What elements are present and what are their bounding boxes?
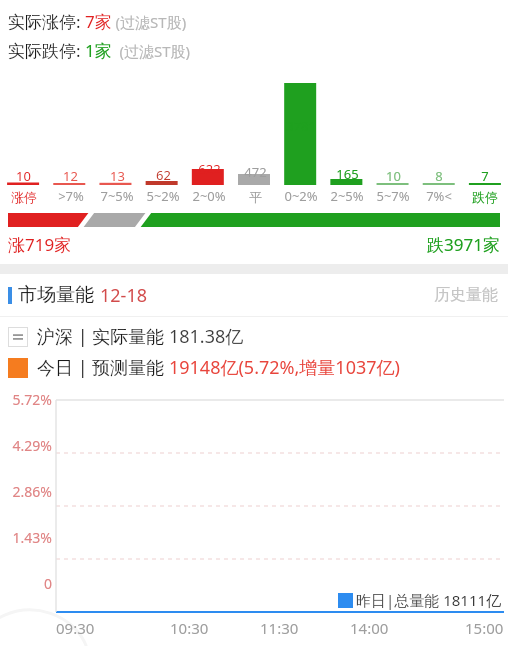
staticText: 市场量能 xyxy=(18,283,94,307)
staticText: 5~2% xyxy=(146,187,180,205)
button[interactable]: 昨日|总量能 18111亿 xyxy=(338,590,502,610)
staticText: 14:00 xyxy=(350,618,389,638)
staticText: 10 xyxy=(16,167,31,185)
staticText: 7%< xyxy=(426,187,452,205)
staticText: 7 xyxy=(481,167,489,185)
staticText: 472 xyxy=(244,163,267,181)
staticText: 622 xyxy=(198,160,221,178)
staticText: >7% xyxy=(58,187,84,205)
staticText: 5~7% xyxy=(376,187,410,205)
staticText: 13 xyxy=(110,167,125,185)
staticText: 09:30 xyxy=(56,618,95,638)
staticText: 平 xyxy=(249,189,262,205)
staticText: 0~2% xyxy=(284,187,318,205)
staticText: 12-18 xyxy=(100,283,147,308)
staticText: 10 xyxy=(386,167,401,185)
staticText: 1.43% xyxy=(12,528,52,547)
staticText: 4.29% xyxy=(12,436,52,455)
staticText: 12 xyxy=(63,167,78,185)
staticText: 沪深 | 实际量能 181.38亿 xyxy=(37,324,244,349)
staticText: 165 xyxy=(336,165,359,183)
staticText: 2~5% xyxy=(330,187,364,205)
staticText: 历史量能 xyxy=(434,285,498,305)
staticText: 8 xyxy=(435,167,443,185)
staticText: 7~5% xyxy=(100,187,134,205)
staticText: 2.86% xyxy=(12,482,52,501)
staticText: 今日 | 预测量能 19148亿(5.72%,增量1037亿) xyxy=(37,355,400,380)
staticText: 涨719家 xyxy=(8,233,72,256)
staticText: 跌停 xyxy=(472,189,498,205)
staticText: 10:30 xyxy=(170,618,209,638)
button[interactable]: 市场量能 xyxy=(0,274,508,316)
staticText: 15:00 xyxy=(465,618,504,638)
staticText: 昨日|总量能 18111亿 xyxy=(356,590,502,610)
button[interactable]: 切换指数 xyxy=(8,327,28,347)
staticText: 跌3971家 xyxy=(427,233,500,256)
staticText: 5.72% xyxy=(12,390,52,409)
staticText: 62 xyxy=(156,166,171,184)
staticText: 涨停 xyxy=(11,189,37,205)
staticText: 实际跌停: 1家 (过滤ST股) xyxy=(8,39,191,62)
staticText: 11:30 xyxy=(260,618,299,638)
staticText: 0 xyxy=(43,574,52,593)
staticText: 2~0% xyxy=(192,187,226,205)
staticText: 实际涨停: 7家 (过滤ST股) xyxy=(8,10,187,33)
